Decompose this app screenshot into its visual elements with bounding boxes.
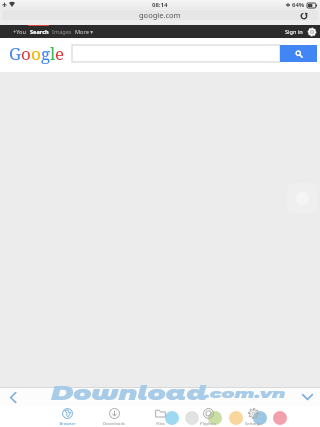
staticText: Images bbox=[52, 28, 72, 36]
button[interactable]: +You bbox=[13, 28, 26, 36]
staticText: Playlists bbox=[200, 421, 216, 427]
staticText: Files bbox=[156, 421, 165, 427]
staticText: Sign in bbox=[285, 28, 303, 36]
staticText: o bbox=[21, 42, 31, 65]
staticText: Browser bbox=[59, 421, 76, 427]
staticText: Settings bbox=[245, 421, 261, 427]
staticText: l bbox=[50, 42, 55, 65]
button[interactable]: Playlists bbox=[185, 406, 231, 427]
staticText: o bbox=[31, 42, 41, 65]
button[interactable]: Sign in bbox=[285, 28, 303, 36]
button[interactable] bbox=[72, 45, 280, 62]
button[interactable]: Downloads bbox=[91, 406, 137, 427]
button[interactable]: Files bbox=[137, 406, 183, 427]
button[interactable]: Settings bbox=[307, 27, 316, 36]
staticText: More ▾ bbox=[75, 28, 94, 36]
staticText: .com.vn bbox=[204, 386, 286, 401]
staticText: e bbox=[55, 42, 64, 65]
staticText: Downloads bbox=[103, 421, 125, 427]
button[interactable]: Images bbox=[52, 28, 72, 36]
button[interactable]: Back bbox=[4, 388, 22, 406]
staticText: +You bbox=[13, 28, 26, 36]
button[interactable]: Browser bbox=[44, 406, 90, 427]
button[interactable]: Search bbox=[30, 28, 49, 36]
staticText: google.com bbox=[139, 10, 181, 20]
staticText: 08:14 bbox=[152, 1, 168, 9]
staticText: Search bbox=[30, 28, 49, 36]
button[interactable]: Collapse bbox=[298, 388, 316, 406]
staticText: g bbox=[41, 42, 50, 65]
button[interactable]: Settings bbox=[230, 406, 276, 427]
button[interactable]: More ▾ bbox=[75, 28, 94, 36]
button[interactable]: Search bbox=[280, 45, 317, 62]
staticText: G bbox=[9, 42, 21, 65]
button[interactable]: Reload bbox=[300, 12, 308, 20]
button[interactable]: google.com bbox=[2, 10, 318, 20]
staticText: Download bbox=[51, 382, 207, 405]
staticText: 64% bbox=[292, 1, 305, 9]
